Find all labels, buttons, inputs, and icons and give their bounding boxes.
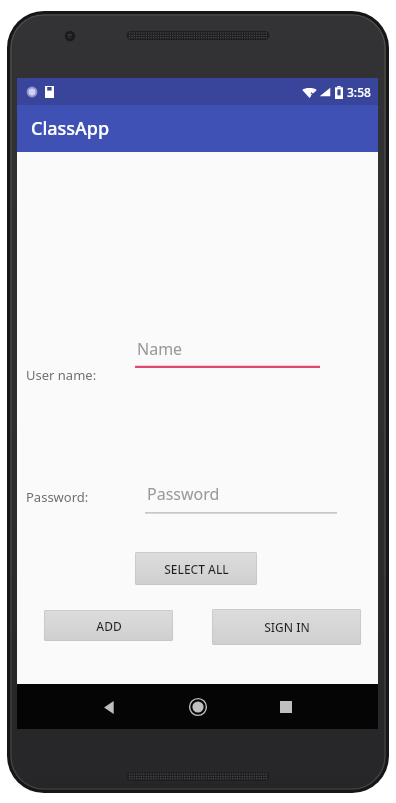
button[interactable]: Home [178, 687, 218, 727]
button[interactable]: SELECT ALL [135, 552, 257, 585]
button[interactable]: DELETE [44, 687, 173, 720]
staticText: User name: [26, 366, 97, 384]
staticText: UPDATE [264, 695, 310, 711]
staticText: 3:58 [347, 84, 371, 100]
staticText: Name [137, 338, 183, 360]
staticText: ClassApp [31, 116, 110, 141]
staticText: ADD [96, 618, 122, 634]
button[interactable]: Password input [145, 482, 337, 514]
button[interactable]: Recent apps [266, 687, 306, 727]
staticText: Password [147, 483, 220, 505]
staticText: Password: [26, 488, 89, 506]
staticText: DELETE [88, 696, 130, 712]
button[interactable]: ADD [44, 610, 173, 641]
button[interactable]: SIGN IN [212, 609, 361, 645]
staticText: SELECT ALL [164, 561, 229, 577]
staticText: SIGN IN [264, 619, 310, 635]
button[interactable]: Back [89, 687, 129, 727]
button[interactable]: Name input [135, 337, 320, 369]
button[interactable]: UPDATE [212, 685, 361, 721]
